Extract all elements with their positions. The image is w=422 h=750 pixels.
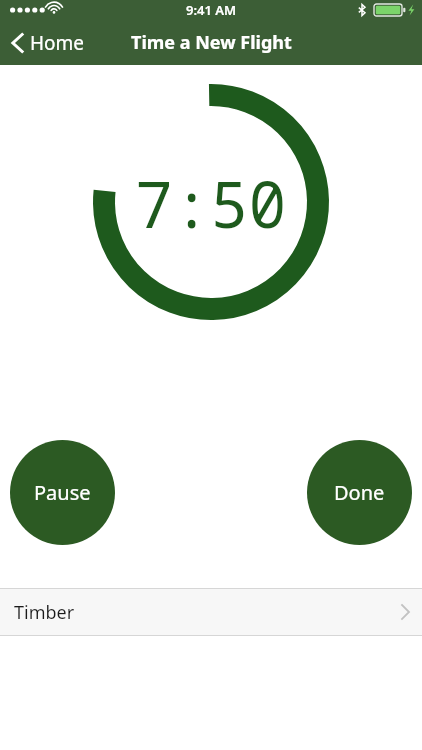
staticText: Home xyxy=(30,30,85,56)
staticText: Done xyxy=(334,479,385,506)
button[interactable]: Timber xyxy=(0,589,422,635)
button[interactable]: Pause xyxy=(10,440,115,545)
staticText: Time a New Flight xyxy=(131,30,292,55)
staticText: 9:41 AM xyxy=(186,1,237,19)
button[interactable]: Done xyxy=(307,440,412,545)
other: Open Timber xyxy=(401,604,410,620)
staticText: Timber xyxy=(14,600,75,625)
staticText: Pause xyxy=(34,479,91,506)
staticText: 7:50 xyxy=(135,161,287,247)
button[interactable]: Home xyxy=(0,24,99,62)
